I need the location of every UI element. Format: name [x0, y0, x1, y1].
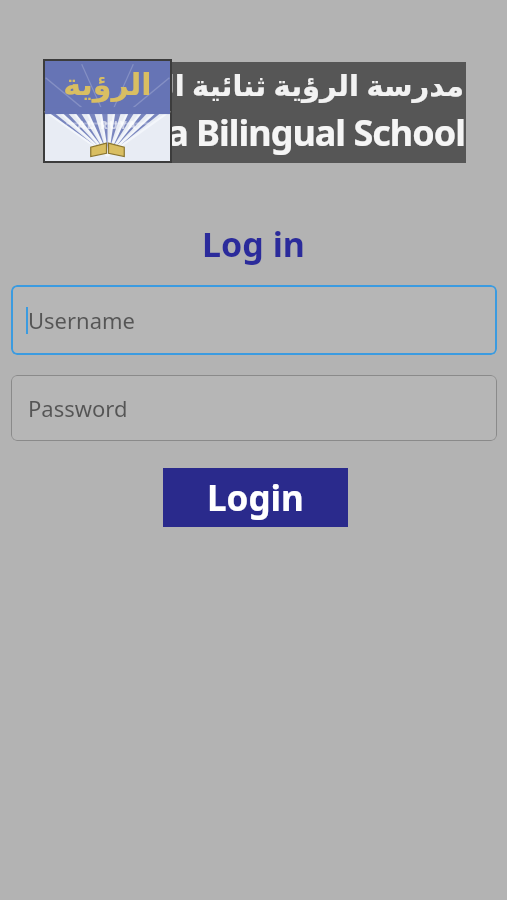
button[interactable]: Password: [11, 375, 497, 441]
staticText: Al-Ruya Bilingual School: [43, 108, 465, 157]
staticText: مدرسة الرؤية ثنائية اللغة: [43, 65, 464, 104]
button[interactable]: Username: [11, 285, 497, 355]
staticText: Username: [28, 305, 136, 335]
staticText: AL RUYA: [43, 117, 172, 132]
staticText: الرؤية: [43, 67, 172, 102]
button[interactable]: Login: [163, 468, 348, 527]
other: Al-Ruya Bilingual School logo: [43, 59, 172, 163]
staticText: Password: [28, 393, 128, 423]
staticText: Log in: [0, 221, 507, 267]
staticText: Login: [207, 474, 304, 522]
